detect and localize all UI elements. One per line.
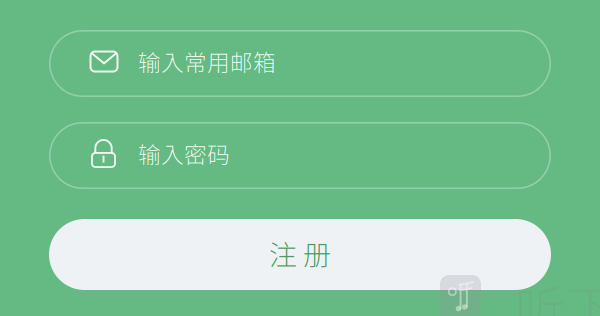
button[interactable]: 输入常用邮箱	[49, 30, 551, 97]
staticText: 输入密码	[138, 141, 230, 168]
button[interactable]: 输入密码	[49, 122, 551, 189]
button[interactable]: 注 册	[49, 219, 551, 290]
staticText: 注 册	[269, 238, 331, 271]
staticText: 输入常用邮箱	[138, 49, 276, 76]
staticText: 听下载	[515, 279, 600, 316]
